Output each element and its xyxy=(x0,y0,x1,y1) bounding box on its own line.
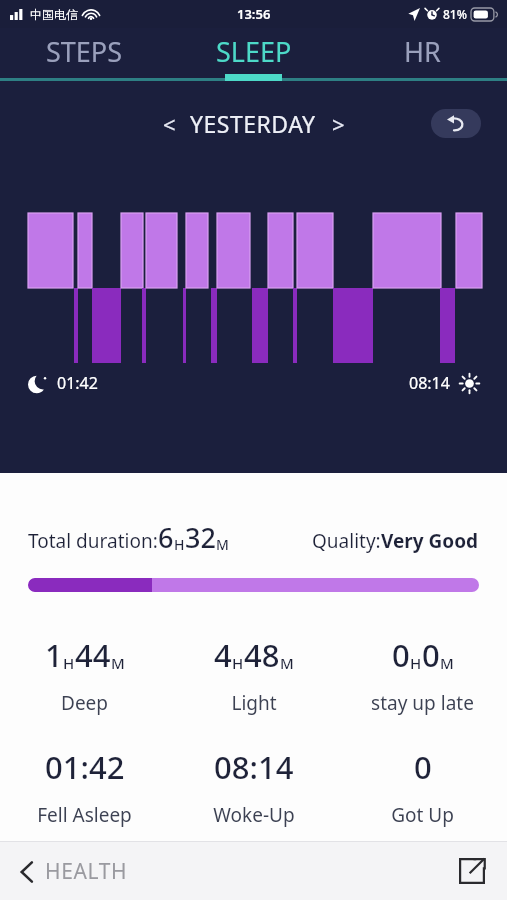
staticText: 6 xyxy=(158,519,174,556)
staticText: 01:42 xyxy=(57,372,98,394)
staticText: HR xyxy=(404,33,441,70)
staticText: M xyxy=(216,535,229,554)
staticText: Got Up xyxy=(391,802,454,828)
staticText: Light xyxy=(231,690,277,716)
staticText: 01:42 xyxy=(45,746,125,788)
staticText: 0 xyxy=(414,746,432,788)
staticText: 中国电信 xyxy=(30,7,78,22)
staticText: M xyxy=(111,653,125,673)
button[interactable]: SLEEP xyxy=(169,28,338,81)
button[interactable]: Refresh xyxy=(431,109,481,138)
staticText: 48 xyxy=(244,634,280,676)
staticText: < xyxy=(163,109,176,139)
button[interactable]: HEALTH xyxy=(20,857,128,886)
staticText: 08:14 xyxy=(409,372,450,394)
staticText: Very Good xyxy=(381,528,479,554)
staticText: 0 xyxy=(392,634,410,676)
staticText: M xyxy=(280,653,294,673)
staticText: stay up late xyxy=(371,690,474,716)
staticText: YESTERDAY xyxy=(190,108,316,139)
staticText: 0 xyxy=(422,634,440,676)
staticText: H xyxy=(63,653,75,673)
staticText: SLEEP xyxy=(216,33,292,70)
staticText: Deep xyxy=(61,690,108,716)
button[interactable]: Next day xyxy=(324,109,353,139)
staticText: Quality: xyxy=(312,528,381,554)
staticText: 32 xyxy=(185,519,216,556)
staticText: 4 xyxy=(214,634,232,676)
staticText: H xyxy=(232,653,244,673)
button[interactable]: STEPS xyxy=(0,28,169,81)
staticText: 08:14 xyxy=(214,746,294,788)
staticText: Woke-Up xyxy=(213,802,295,828)
staticText: 13:56 xyxy=(237,5,271,23)
staticText: HEALTH xyxy=(45,857,128,886)
button[interactable]: Open in new window xyxy=(457,856,487,886)
button[interactable]: Previous day xyxy=(155,109,184,139)
staticText: STEPS xyxy=(46,33,123,70)
staticText: Total duration: xyxy=(28,528,158,554)
staticText: Fell Asleep xyxy=(37,802,132,828)
button[interactable]: HR xyxy=(338,28,507,81)
staticText: 44 xyxy=(75,634,111,676)
staticText: H xyxy=(174,535,185,554)
staticText: > xyxy=(332,109,345,139)
staticText: M xyxy=(440,653,454,673)
staticText: 81% xyxy=(443,6,467,22)
staticText: H xyxy=(410,653,422,673)
staticText: 1 xyxy=(45,634,63,676)
